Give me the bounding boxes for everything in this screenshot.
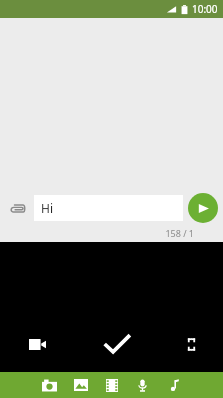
button[interactable]: Hi: [34, 195, 183, 221]
button[interactable]: Take photo: [34, 372, 65, 398]
staticText: 10:00: [192, 2, 218, 16]
button[interactable]: Attach: [0, 191, 34, 225]
button[interactable]: Accept photo: [74, 322, 159, 366]
button[interactable]: Record audio: [127, 372, 158, 398]
button[interactable]: Pick video: [96, 372, 127, 398]
button[interactable]: Full screen: [159, 322, 223, 366]
staticText: Hi: [41, 200, 53, 216]
button[interactable]: Send: [188, 193, 218, 223]
staticText: 158 / 1: [0, 227, 194, 239]
button[interactable]: Switch to video: [0, 322, 74, 366]
button[interactable]: Pick music: [158, 372, 189, 398]
button[interactable]: Pick image: [65, 372, 96, 398]
